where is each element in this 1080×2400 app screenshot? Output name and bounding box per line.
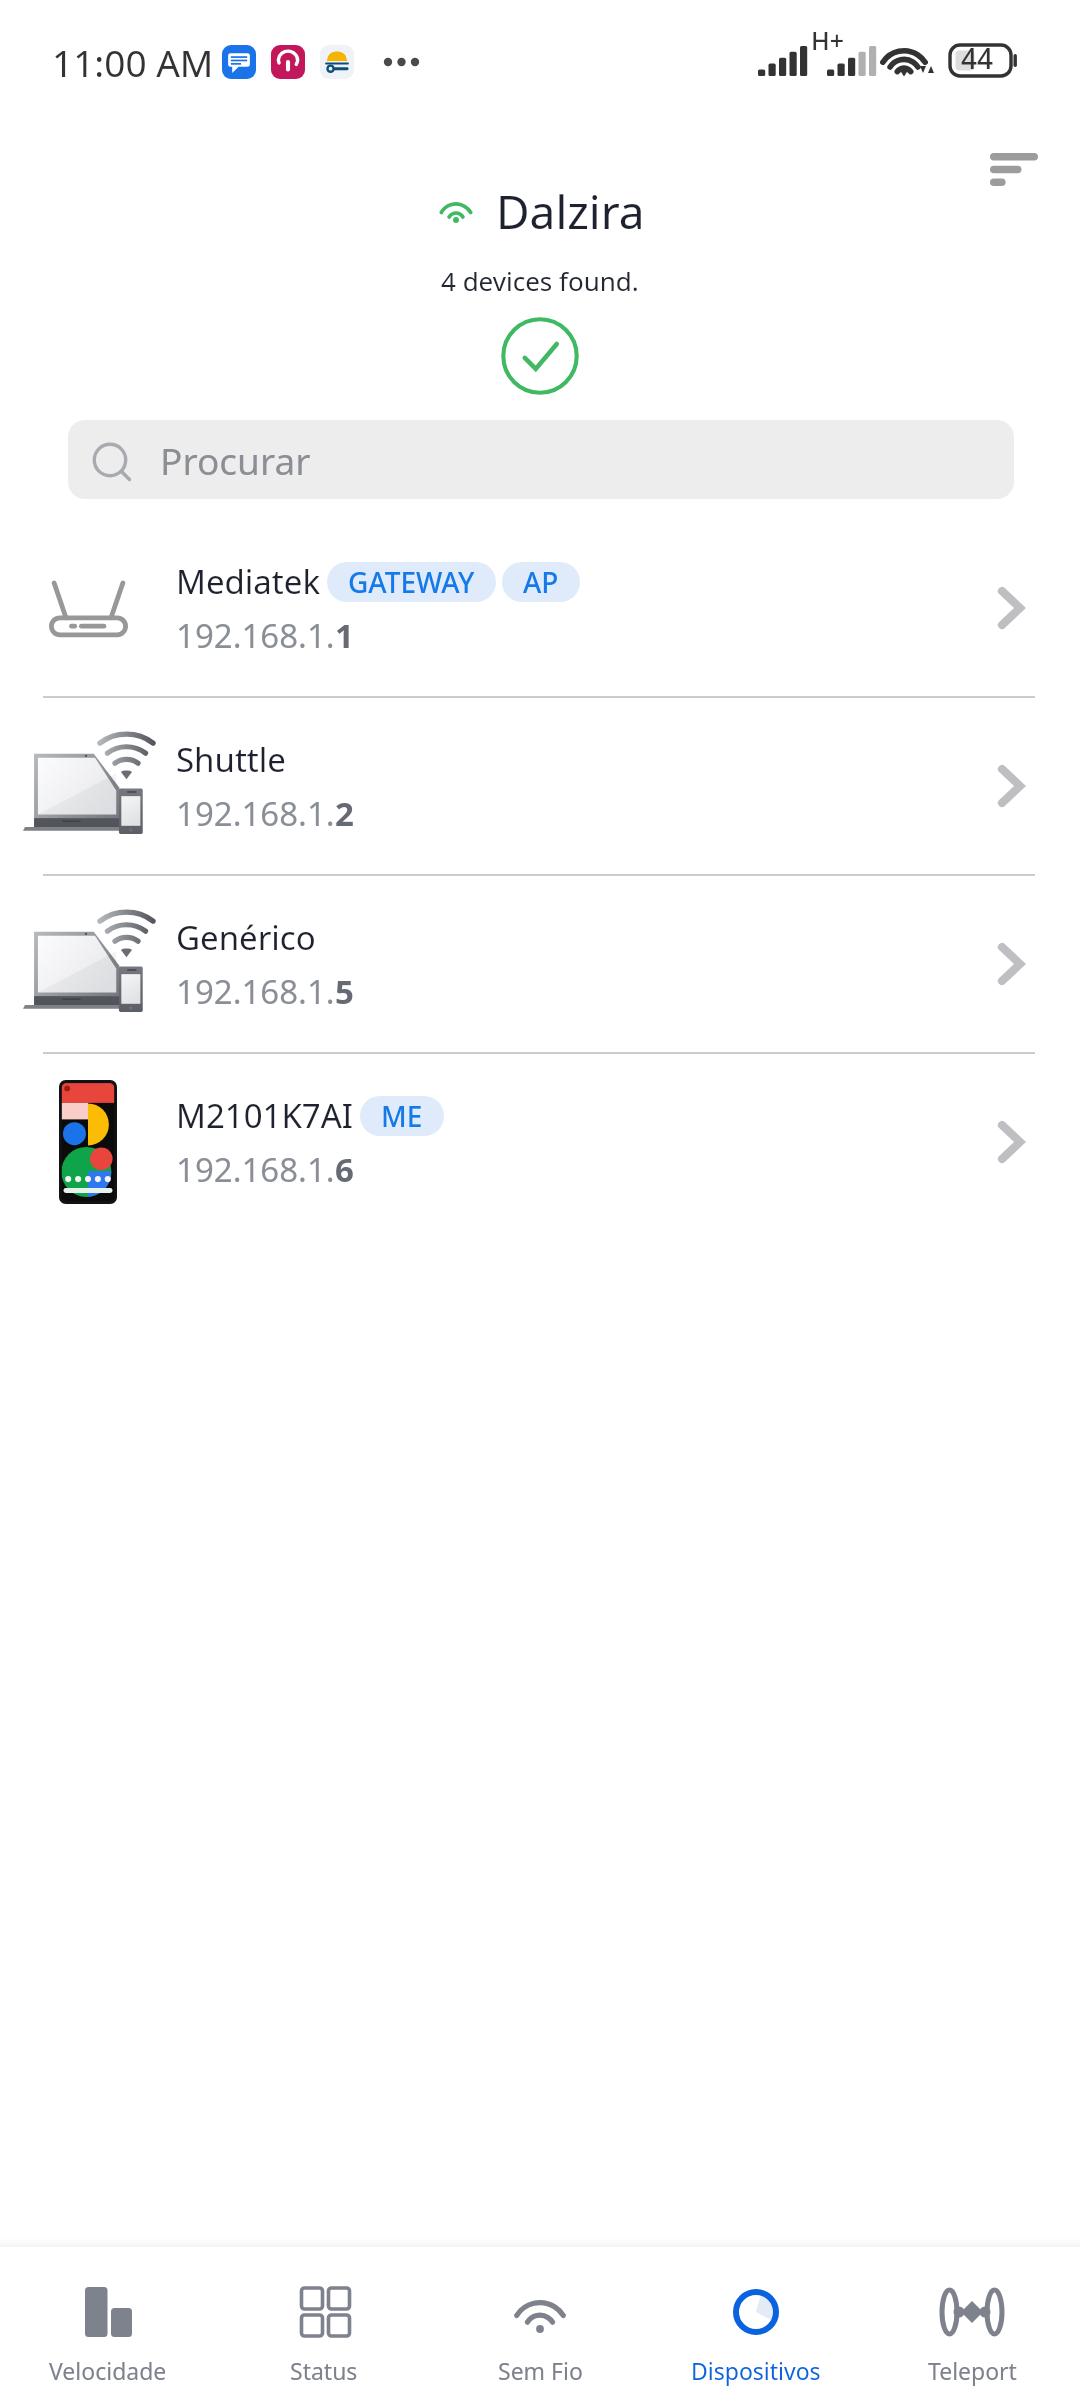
staticText: 192.168.1. xyxy=(176,1147,335,1192)
staticText: Dalzira xyxy=(496,180,645,243)
staticText: Genérico xyxy=(176,915,316,960)
staticText: H+ xyxy=(811,23,845,57)
staticText: 4 devices found. xyxy=(441,263,639,298)
staticText: 11:00 AM xyxy=(52,37,214,87)
button[interactable]: Sem Fio xyxy=(432,2261,648,2386)
staticText: AP xyxy=(523,563,559,601)
staticText: Dispositivos xyxy=(691,2355,821,2386)
staticText: 6 xyxy=(335,1147,354,1192)
staticText: Mediatek xyxy=(176,559,321,604)
staticText: ME xyxy=(381,1097,423,1135)
button[interactable]: Status xyxy=(216,2261,432,2386)
button[interactable]: Sort xyxy=(978,133,1050,205)
staticText: M2101K7AI xyxy=(176,1093,354,1138)
staticText: 192.168.1. xyxy=(176,969,335,1014)
staticText: 192.168.1. xyxy=(176,791,335,836)
staticText: Velocidade xyxy=(49,2355,167,2386)
staticText: Shuttle xyxy=(176,737,286,782)
staticText: Sem Fio xyxy=(498,2355,583,2386)
staticText: 1 xyxy=(335,613,354,658)
staticText: 5 xyxy=(335,969,354,1014)
staticText: 44 xyxy=(961,39,994,77)
button[interactable]: Teleport xyxy=(864,2261,1080,2386)
staticText: GATEWAY xyxy=(348,563,475,601)
staticText: 2 xyxy=(335,791,354,836)
staticText: Procurar xyxy=(160,435,311,485)
button[interactable]: Genérico xyxy=(0,876,1080,1052)
button[interactable]: Mediatek xyxy=(0,520,1080,696)
staticText: 192.168.1. xyxy=(176,613,335,658)
button[interactable]: Shuttle xyxy=(0,698,1080,874)
button[interactable]: M2101K7AI xyxy=(0,1054,1080,1230)
staticText: Teleport xyxy=(928,2355,1017,2386)
button[interactable]: Velocidade xyxy=(0,2261,216,2386)
button[interactable]: Procurar xyxy=(68,420,1014,499)
button[interactable]: Dispositivos xyxy=(648,2261,864,2386)
staticText: Status xyxy=(290,2355,358,2386)
